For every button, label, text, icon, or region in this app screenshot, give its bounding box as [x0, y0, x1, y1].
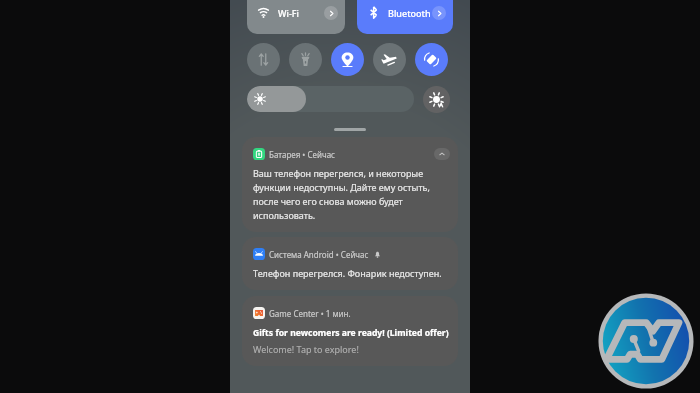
button[interactable]: Батарея • Сейчас — [242, 137, 458, 232]
staticText: Gifts for newcomers are ready! (Limited … — [253, 325, 449, 339]
button[interactable]: Auto rotate — [415, 43, 448, 76]
button[interactable]: Auto brightness — [423, 86, 450, 113]
button[interactable]: Система Android • Сейчас — [242, 237, 458, 290]
button[interactable]: Game Center • 1 мин. — [242, 296, 458, 366]
staticText: Телефон перегрелся. Фонарик недоступен. — [253, 266, 442, 280]
button[interactable]: Location — [331, 43, 364, 76]
staticText: Game Center • 1 мин. — [269, 308, 351, 319]
button[interactable]: Flashlight — [289, 43, 322, 76]
staticText: Система Android • Сейчас — [269, 249, 369, 260]
staticText: Welcome! Tap to explore! — [253, 342, 359, 356]
button[interactable]: Bluetooth — [357, 0, 453, 34]
staticText: Bluetooth — [388, 7, 431, 19]
button[interactable]: Brightness — [247, 86, 414, 112]
button[interactable]: Collapse notification — [434, 148, 450, 160]
button[interactable]: Mobile data — [247, 43, 280, 76]
staticText: Ваш телефон перегрелся, и некоторые функ… — [253, 166, 450, 222]
staticText: Батарея • Сейчас — [269, 149, 336, 160]
button[interactable]: Airplane mode — [373, 43, 406, 76]
staticText: Wi-Fi — [278, 7, 299, 19]
button[interactable]: Wi-Fi — [247, 0, 345, 34]
